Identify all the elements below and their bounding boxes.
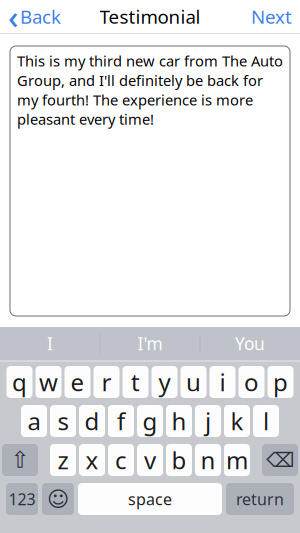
button[interactable]: return [226, 483, 294, 515]
button[interactable]: q [6, 366, 32, 398]
staticText: ‹ [8, 0, 18, 38]
button[interactable]: s [50, 405, 76, 437]
button[interactable]: o [238, 366, 264, 398]
staticText: y [158, 366, 170, 398]
staticText: u [186, 366, 201, 398]
button[interactable]: 123 [6, 483, 38, 515]
button[interactable]: t [122, 366, 148, 398]
staticText: e [70, 366, 84, 398]
staticText: d [84, 405, 99, 437]
button[interactable]: n [195, 444, 221, 476]
staticText: a [27, 405, 40, 437]
button[interactable]: r [93, 366, 119, 398]
staticText: ☺ [47, 487, 69, 511]
staticText: i [219, 366, 225, 398]
staticText: f [117, 405, 125, 437]
staticText: Testimonial [99, 4, 200, 29]
button[interactable]: f [108, 405, 134, 437]
staticText: g [142, 405, 157, 437]
staticText: r [101, 366, 111, 398]
staticText: ⇧ [10, 447, 29, 473]
button[interactable]: y [151, 366, 177, 398]
button[interactable]: Shift [2, 444, 38, 476]
staticText: space [128, 488, 172, 510]
button[interactable]: You [200, 327, 299, 359]
staticText: z [57, 444, 68, 476]
staticText: j [205, 405, 211, 437]
staticText: Next [251, 4, 292, 29]
staticText: q [12, 366, 27, 398]
button[interactable]: i [209, 366, 235, 398]
button[interactable]: a [21, 405, 47, 437]
staticText: You [235, 332, 265, 355]
button[interactable]: e [64, 366, 90, 398]
staticText: v [144, 444, 156, 476]
staticText: I [47, 332, 53, 355]
button[interactable]: Next [243, 0, 300, 32]
button[interactable]: x [79, 444, 105, 476]
button[interactable]: Emoji [42, 483, 74, 515]
button[interactable]: u [180, 366, 206, 398]
staticText: b [171, 444, 186, 476]
button[interactable]: v [137, 444, 163, 476]
staticText: m [226, 444, 248, 476]
staticText: 123 [8, 488, 35, 510]
button[interactable]: j [195, 405, 221, 437]
staticText: ⌫ [266, 449, 294, 471]
button[interactable]: l [253, 405, 279, 437]
button[interactable]: w [35, 366, 61, 398]
button[interactable]: I'm [100, 327, 199, 359]
button[interactable]: m [224, 444, 250, 476]
button[interactable]: d [79, 405, 105, 437]
staticText: x [85, 444, 98, 476]
staticText: s [57, 405, 68, 437]
staticText: k [230, 405, 243, 437]
staticText: I'm [137, 332, 162, 355]
button[interactable]: b [166, 444, 192, 476]
button[interactable]: z [50, 444, 76, 476]
staticText: n [200, 444, 215, 476]
button[interactable]: p [267, 366, 293, 398]
button[interactable]: c [108, 444, 134, 476]
staticText: t [131, 366, 140, 398]
staticText: w [39, 366, 58, 398]
staticText: This is my third new car from The Auto G… [17, 51, 283, 129]
staticText: l [263, 405, 269, 437]
staticText: o [244, 366, 259, 398]
button[interactable]: g [137, 405, 163, 437]
button[interactable]: ‹ [0, 0, 69, 32]
button[interactable]: space [78, 483, 222, 515]
button[interactable]: Delete [262, 444, 298, 476]
staticText: p [273, 366, 288, 398]
staticText: h [171, 405, 186, 437]
button[interactable]: I [0, 327, 99, 359]
staticText: Back [20, 4, 61, 29]
staticText: return [236, 488, 284, 510]
button[interactable]: h [166, 405, 192, 437]
staticText: c [115, 444, 127, 476]
button[interactable]: k [224, 405, 250, 437]
